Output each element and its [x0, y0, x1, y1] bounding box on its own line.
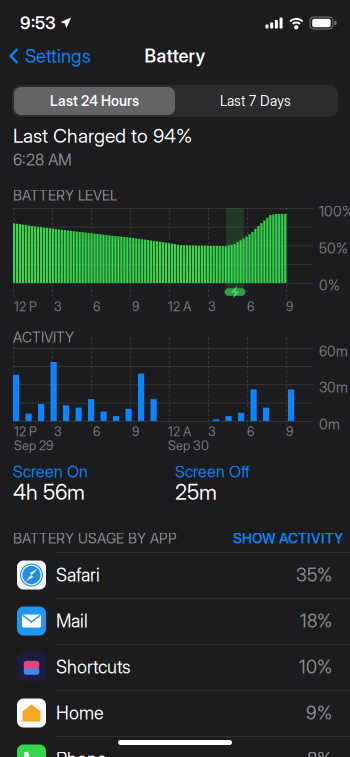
- staticText: 25m: [175, 479, 217, 505]
- staticText: 60m: [319, 343, 348, 360]
- staticText: Battery: [144, 45, 205, 67]
- staticText: 9:53: [20, 12, 56, 33]
- staticText: 4h 56m: [13, 479, 85, 505]
- staticText: 10%: [299, 656, 332, 678]
- staticText: 6:28 AM: [13, 150, 72, 169]
- staticText: Settings: [25, 45, 91, 67]
- staticText: Mail: [56, 610, 88, 632]
- button[interactable]: Phone: [0, 736, 350, 757]
- staticText: 18%: [300, 610, 332, 632]
- staticText: 6: [93, 299, 100, 314]
- staticText: 12 A: [168, 424, 191, 439]
- staticText: 9: [132, 424, 139, 439]
- button[interactable]: Safari: [0, 552, 350, 598]
- staticText: SHOW ACTIVITY: [233, 530, 343, 547]
- staticText: 50%: [319, 240, 348, 257]
- staticText: BATTERY LEVEL: [13, 187, 117, 204]
- staticText: Home: [56, 702, 104, 724]
- staticText: 9: [286, 424, 293, 439]
- staticText: Last 7 Days: [220, 92, 291, 109]
- staticText: Phone: [56, 748, 107, 757]
- button[interactable]: Shortcuts: [0, 644, 350, 690]
- staticText: 9%: [306, 702, 332, 724]
- staticText: 0m: [319, 416, 340, 433]
- staticText: 35%: [296, 564, 332, 586]
- staticText: BATTERY USAGE BY APP: [13, 530, 177, 547]
- staticText: Last 24 Hours: [50, 92, 139, 109]
- button[interactable]: SHOW ACTIVITY: [229, 527, 347, 550]
- staticText: 9: [132, 299, 139, 314]
- staticText: Sep 30: [168, 438, 209, 453]
- staticText: 6: [93, 424, 100, 439]
- staticText: 12 P: [14, 424, 37, 439]
- staticText: 0%: [319, 277, 340, 294]
- button[interactable]: Mail: [0, 598, 350, 644]
- button[interactable]: Last 24 Hours: [14, 87, 175, 115]
- staticText: 8%: [307, 748, 332, 757]
- staticText: 100%: [319, 203, 350, 220]
- button[interactable]: Last 7 Days: [175, 87, 336, 115]
- staticText: 30m: [319, 379, 348, 396]
- staticText: Screen Off: [175, 462, 250, 481]
- staticText: Sep 29: [14, 438, 53, 453]
- staticText: Last Charged to 94%: [13, 124, 192, 147]
- staticText: 12 P: [14, 299, 37, 314]
- staticText: Shortcuts: [56, 656, 131, 678]
- staticText: 6: [247, 424, 254, 439]
- button[interactable]: Home: [0, 690, 350, 736]
- staticText: 6: [247, 299, 254, 314]
- button[interactable]: Settings: [0, 40, 100, 72]
- staticText: 3: [208, 424, 216, 439]
- staticText: 9: [286, 299, 293, 314]
- staticText: 3: [208, 299, 216, 314]
- staticText: 3: [54, 424, 62, 439]
- staticText: 3: [54, 299, 62, 314]
- staticText: ACTIVITY: [13, 329, 74, 346]
- staticText: Screen On: [13, 462, 88, 481]
- staticText: 12 A: [168, 299, 191, 314]
- staticText: Safari: [56, 564, 100, 586]
